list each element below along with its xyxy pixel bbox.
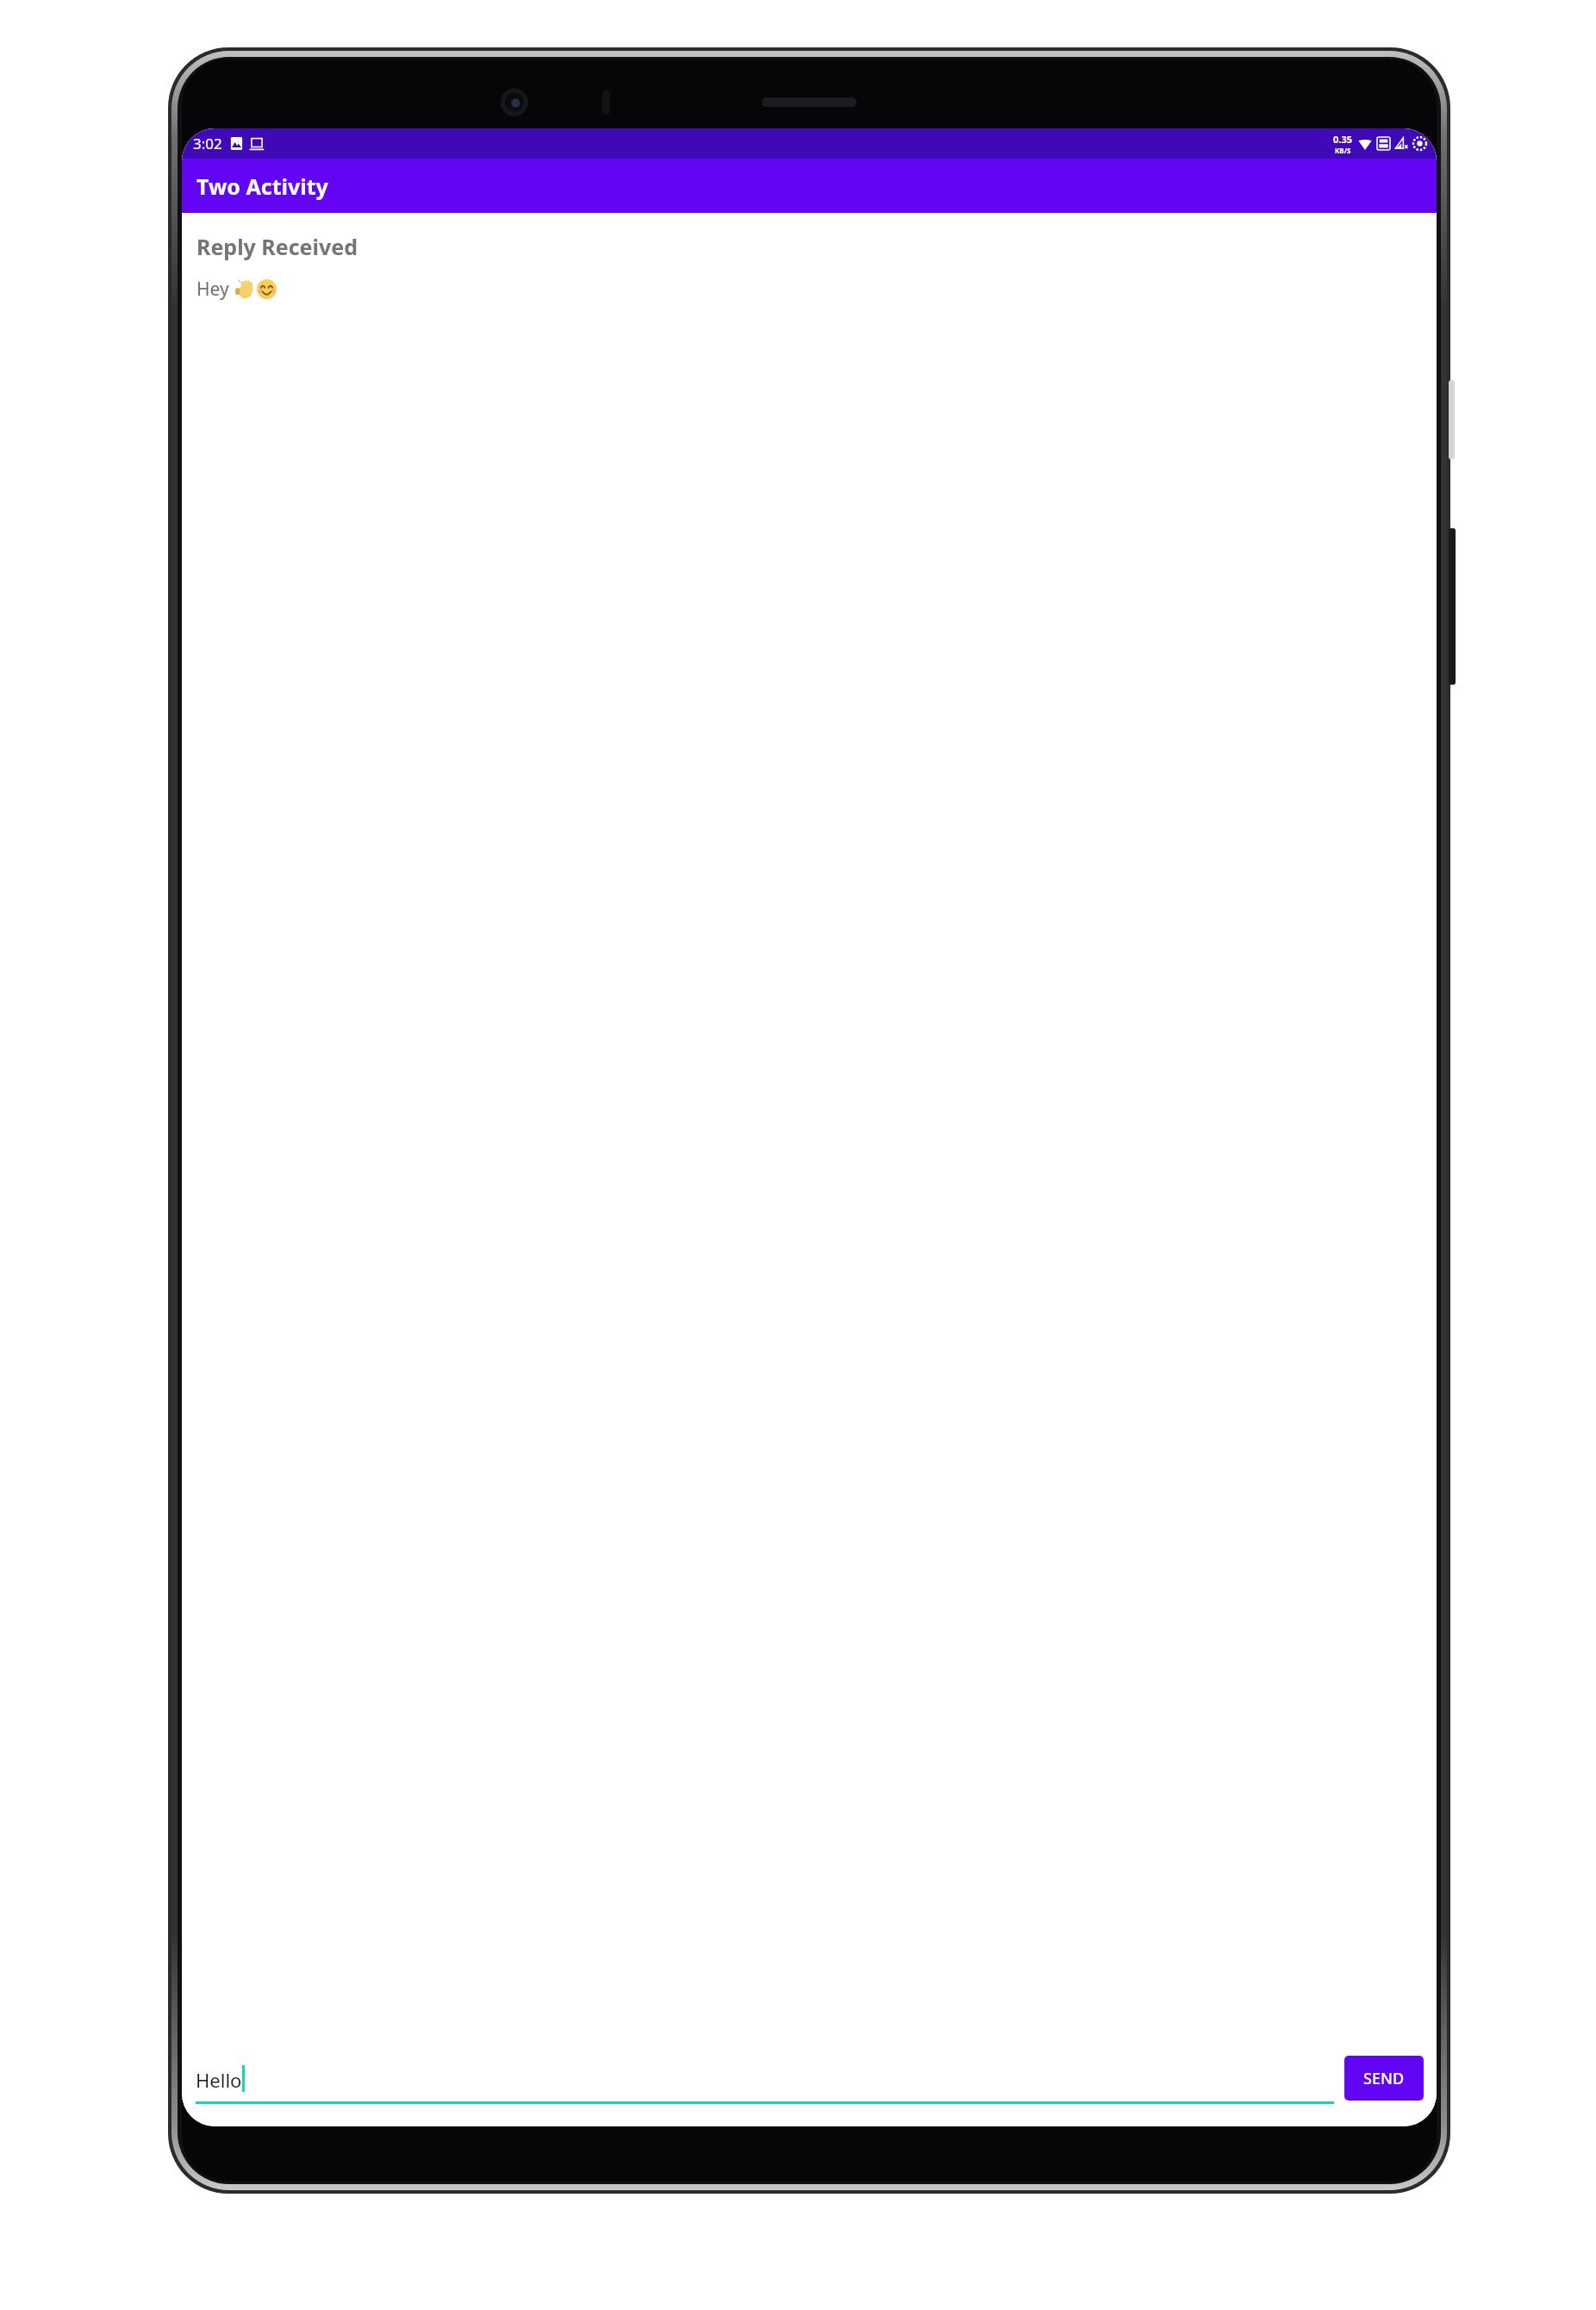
other: No signal [1395,137,1408,150]
staticText: Hello [196,2067,242,2093]
other: Cast [250,137,264,151]
staticText: SEND [1363,2068,1405,2089]
staticText: 3:02 [193,134,222,153]
button[interactable]: SEND [1344,2056,1424,2101]
staticText: 0.35 [1333,133,1352,146]
other: Battery 92 percent [1412,136,1427,151]
other: Wi-Fi [1358,137,1372,151]
other: Waving hand [234,279,254,299]
staticText: Reply Received [196,232,358,261]
other: Smiling face [257,279,277,299]
other: VoLTE [1377,137,1390,150]
staticText: KB/S [1335,146,1351,155]
other: Screenshot [230,137,243,150]
staticText: Two Activity [196,172,328,201]
staticText: Hey [196,277,234,302]
button[interactable]: Hello [196,2065,1334,2104]
